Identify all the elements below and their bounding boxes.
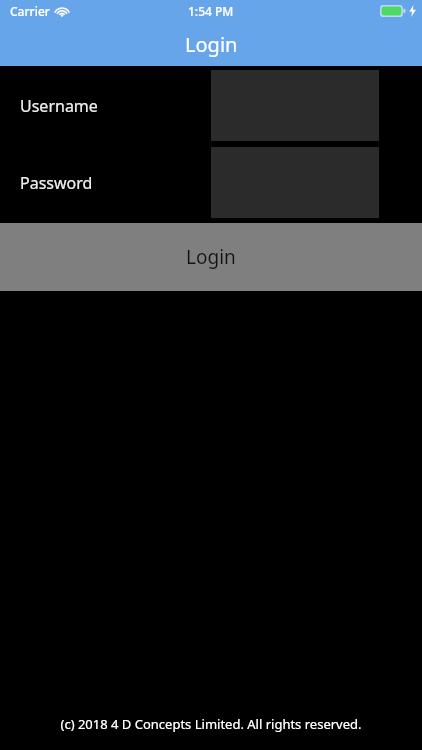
staticText: Password: [20, 172, 93, 194]
button[interactable]: Login: [0, 223, 422, 291]
staticText: (c) 2018 4 D Concepts Limited. All right…: [60, 715, 362, 733]
staticText: Username: [20, 95, 98, 117]
staticText: Login: [185, 31, 238, 58]
staticText: 1:54 PM: [188, 3, 234, 19]
staticText: Login: [186, 244, 236, 270]
staticText: Carrier: [10, 3, 50, 19]
